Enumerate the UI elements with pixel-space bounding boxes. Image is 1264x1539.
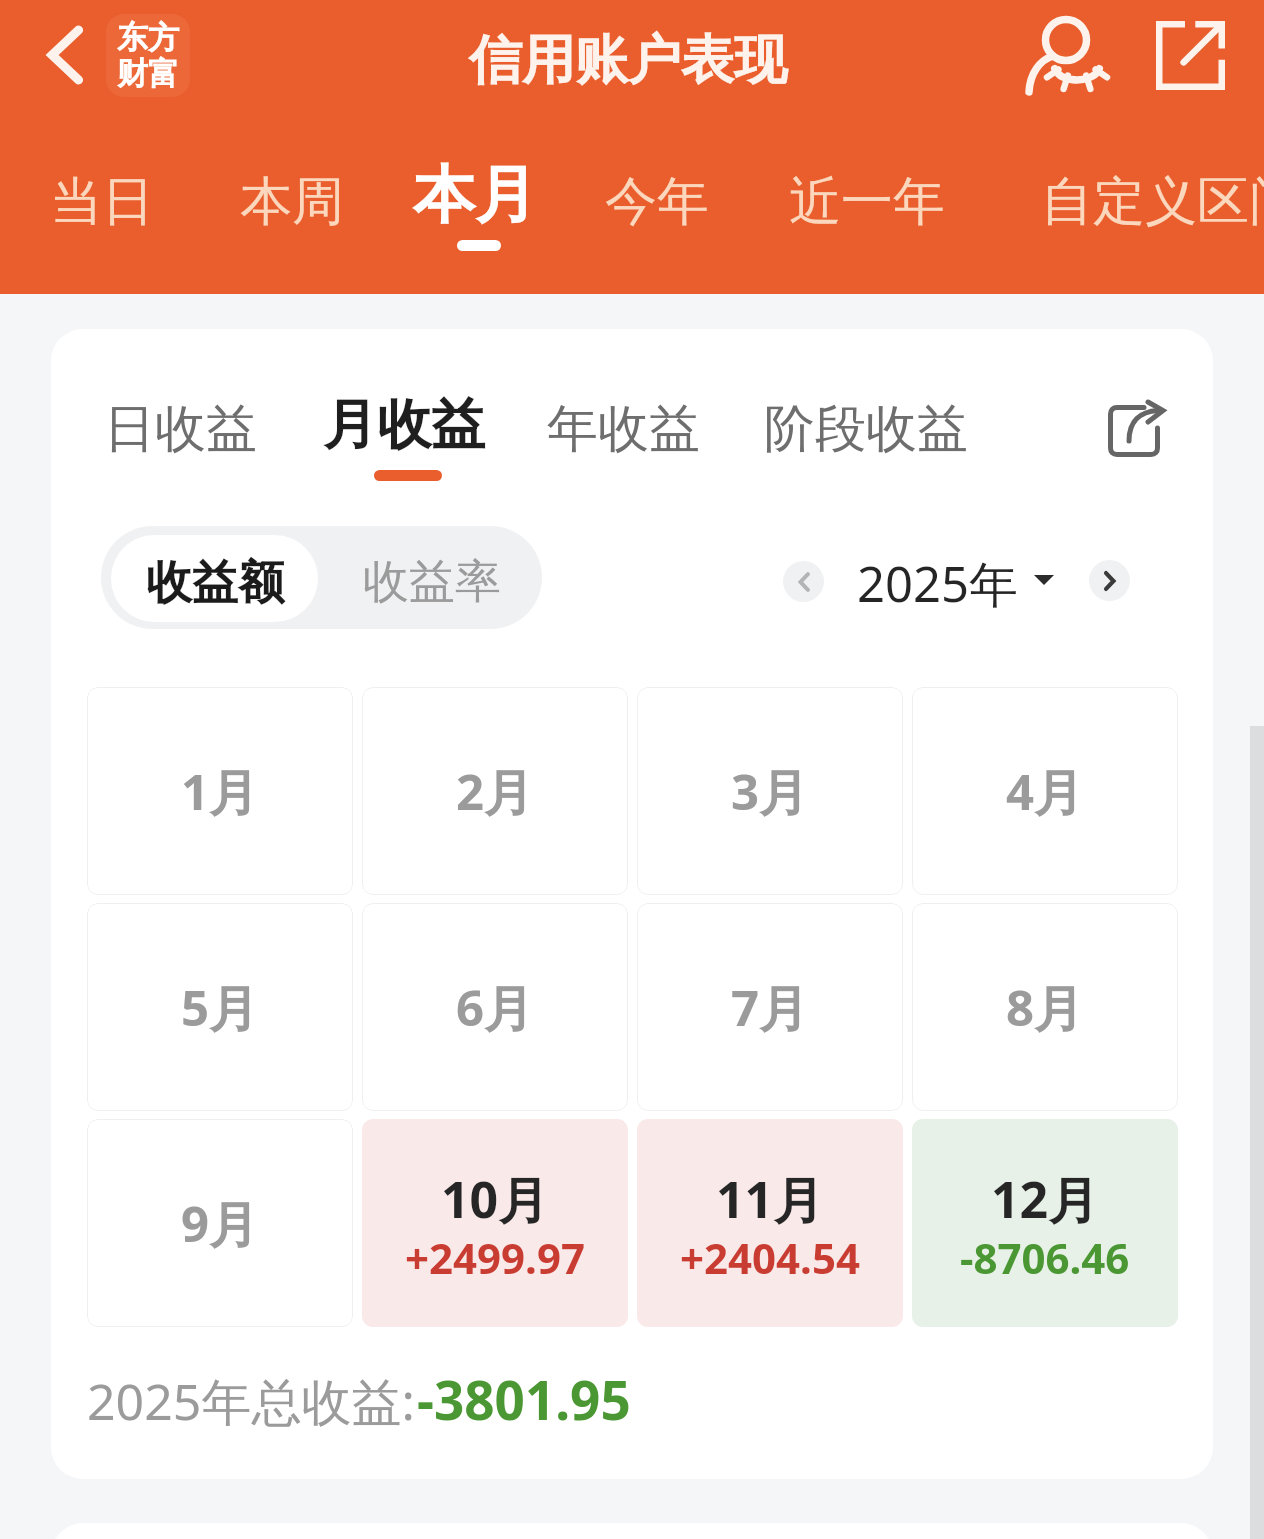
button[interactable]: 7月 <box>637 903 903 1111</box>
button[interactable]: Hide amounts <box>1019 9 1109 99</box>
button[interactable]: 近一年 <box>773 134 960 254</box>
button[interactable]: 4月 <box>912 687 1178 895</box>
staticText: 7月 <box>731 974 809 1041</box>
button[interactable]: 12月 <box>912 1119 1178 1327</box>
staticText: 5月 <box>181 974 259 1041</box>
button[interactable]: 日收益 <box>93 369 268 469</box>
button[interactable]: 年收益 <box>532 369 714 469</box>
button[interactable]: 11月 <box>637 1119 903 1327</box>
button[interactable]: 9月 <box>87 1119 353 1327</box>
button[interactable]: 收益额 <box>111 535 318 622</box>
staticText: 信用账户表现 <box>469 27 787 94</box>
staticText: 2月 <box>456 758 534 825</box>
button[interactable]: 10月 <box>362 1119 628 1327</box>
button[interactable]: 收益率 <box>318 526 542 629</box>
button[interactable]: Next year <box>1089 560 1130 601</box>
button[interactable]: 本月 <box>400 134 549 254</box>
staticText: +2499.97 <box>405 1229 585 1286</box>
staticText: 收益额 <box>146 554 284 612</box>
button[interactable]: 3月 <box>637 687 903 895</box>
staticText: 东方 <box>117 18 179 57</box>
staticText: 阶段收益 <box>764 397 968 461</box>
button[interactable]: 自定义区间 <box>1011 134 1264 254</box>
staticText: +2404.54 <box>680 1229 860 1286</box>
button[interactable]: 2月 <box>362 687 628 895</box>
staticText: 年收益 <box>547 397 700 461</box>
button[interactable]: Previous year <box>783 561 824 602</box>
staticText: 日收益 <box>104 397 257 461</box>
staticText: -3801.95 <box>417 1363 631 1435</box>
button[interactable]: 本周 <box>225 134 358 254</box>
staticText: 8月 <box>1006 974 1084 1041</box>
staticText: 9月 <box>181 1190 259 1257</box>
button[interactable]: Share <box>1096 395 1176 475</box>
staticText: 12月 <box>991 1165 1099 1233</box>
button[interactable]: Open externally <box>1146 11 1234 99</box>
staticText: 自定义区间 <box>1041 169 1264 235</box>
staticText: 2025年总收益: <box>87 1367 428 1435</box>
button[interactable]: 8月 <box>912 903 1178 1111</box>
button[interactable]: 6月 <box>362 903 628 1111</box>
staticText: 财富 <box>117 54 179 93</box>
staticText: 3月 <box>731 758 809 825</box>
button[interactable]: 5月 <box>87 903 353 1111</box>
button[interactable]: 1月 <box>87 687 353 895</box>
button[interactable]: 当日 <box>39 134 164 254</box>
staticText: 当日 <box>50 169 154 235</box>
button[interactable]: Back <box>24 16 102 94</box>
staticText: 2025年 <box>857 550 1019 617</box>
staticText: 11月 <box>716 1165 824 1233</box>
button[interactable]: 月收益 <box>307 369 500 469</box>
staticText: -8706.46 <box>960 1229 1130 1286</box>
staticText: 4月 <box>1006 758 1084 825</box>
staticText: 1月 <box>181 758 259 825</box>
staticText: 近一年 <box>789 169 945 235</box>
button[interactable]: East Money home <box>106 14 190 97</box>
button[interactable]: 阶段收益 <box>750 369 981 469</box>
staticText: 本周 <box>240 169 344 235</box>
staticText: 月收益 <box>323 391 485 459</box>
staticText: 今年 <box>605 169 709 235</box>
staticText: 6月 <box>456 974 534 1041</box>
staticText: 本月 <box>413 156 537 234</box>
button[interactable]: 2025年 <box>857 550 1054 617</box>
staticText: 10月 <box>441 1165 549 1233</box>
button[interactable]: 今年 <box>589 134 724 254</box>
staticText: 收益率 <box>363 553 501 611</box>
